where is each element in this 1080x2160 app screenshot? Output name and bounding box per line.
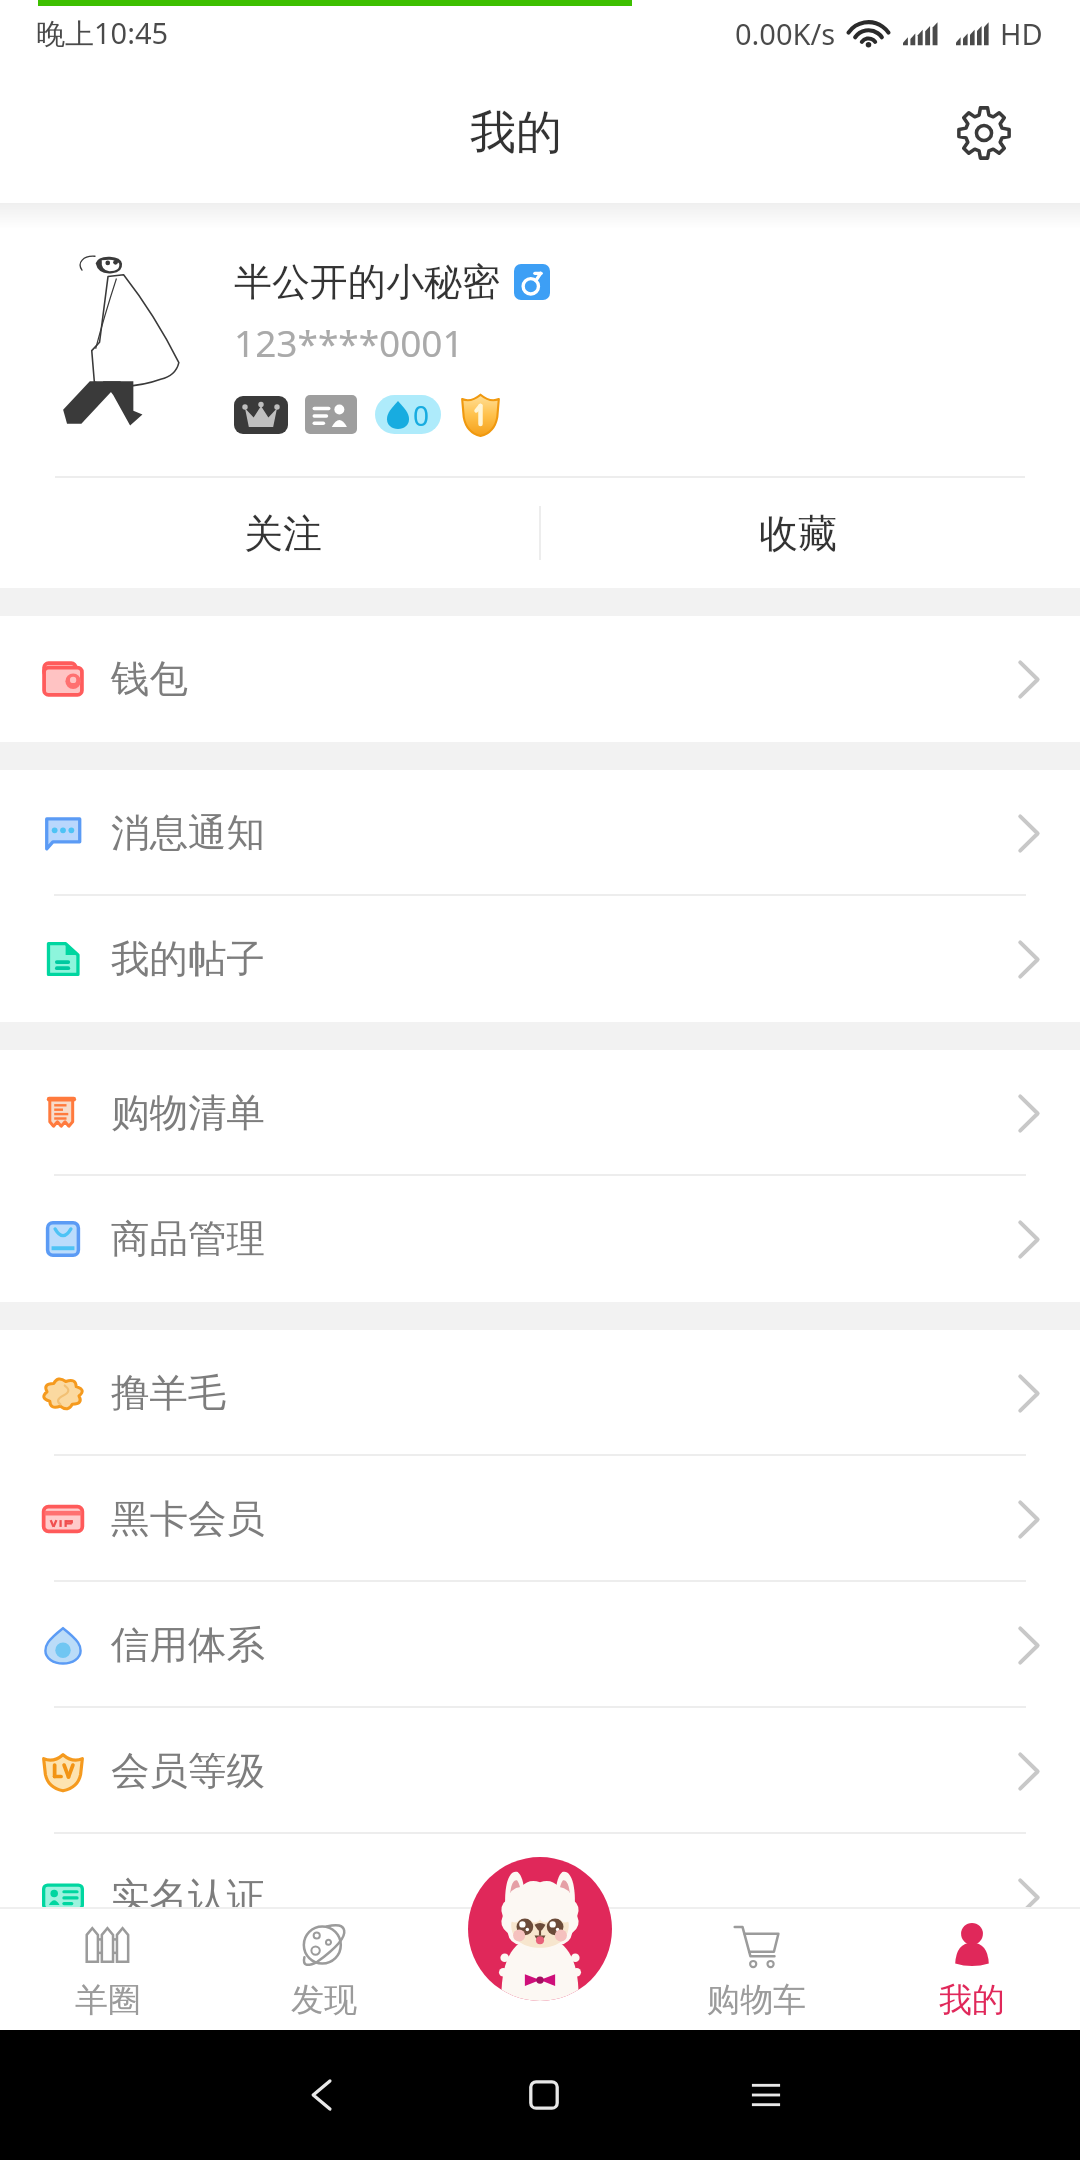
staticText: 123****0001 xyxy=(234,317,464,367)
staticText: 收藏 xyxy=(759,509,837,558)
button[interactable]: 我的 xyxy=(864,1907,1080,2030)
staticText: 我的帖子 xyxy=(111,935,265,984)
staticText: 黑卡会员 xyxy=(111,1495,265,1544)
button[interactable]: 发现 xyxy=(216,1907,432,2030)
other: Recents xyxy=(744,2073,788,2117)
button[interactable]: Alpaca xyxy=(468,1857,612,2001)
button[interactable]: 购物车 xyxy=(648,1907,864,2030)
staticText: 0 xyxy=(413,396,430,434)
staticText: 实名认证 xyxy=(111,1873,265,1907)
button[interactable]: 关注 xyxy=(0,478,539,588)
button[interactable]: 信用体系 xyxy=(0,1582,1080,1708)
staticText: 我的 xyxy=(470,104,562,162)
staticText: HD xyxy=(1000,14,1043,53)
button[interactable]: 羊圈 xyxy=(0,1907,216,2030)
button[interactable]: 钱包 xyxy=(0,616,1080,742)
button[interactable]: 购物清单 xyxy=(0,1050,1080,1176)
staticText: 羊圈 xyxy=(75,1979,141,2021)
staticText: 发现 xyxy=(291,1979,357,2021)
staticText: 购物车 xyxy=(707,1979,806,2021)
button[interactable]: 商品管理 xyxy=(0,1176,1080,1302)
staticText: 消息通知 xyxy=(111,809,265,858)
staticText: 钱包 xyxy=(111,655,188,704)
button[interactable]: 我的帖子 xyxy=(0,896,1080,1022)
staticText: 会员等级 xyxy=(111,1747,265,1796)
button[interactable]: 消息通知 xyxy=(0,770,1080,896)
staticText: 关注 xyxy=(244,509,322,558)
staticText: 信用体系 xyxy=(111,1621,265,1670)
staticText: 商品管理 xyxy=(111,1215,265,1264)
button[interactable]: 会员等级 xyxy=(0,1708,1080,1834)
button[interactable]: 黑卡会员 xyxy=(0,1456,1080,1582)
button[interactable]: 实名认证 xyxy=(0,1834,1080,1907)
button[interactable]: 收藏 xyxy=(541,478,1080,588)
staticText: 我的 xyxy=(939,1979,1005,2021)
staticText: 半公开的小秘密 xyxy=(234,258,500,306)
staticText: 0.00K/s xyxy=(735,14,836,53)
staticText: 撸羊毛 xyxy=(111,1369,227,1418)
button[interactable]: Settings xyxy=(946,95,1022,171)
button[interactable]: 撸羊毛 xyxy=(0,1330,1080,1456)
other: Home xyxy=(522,2073,566,2117)
staticText: 购物清单 xyxy=(111,1089,265,1138)
other: Back xyxy=(300,2073,344,2117)
staticText: 晚上10:45 xyxy=(36,13,169,53)
